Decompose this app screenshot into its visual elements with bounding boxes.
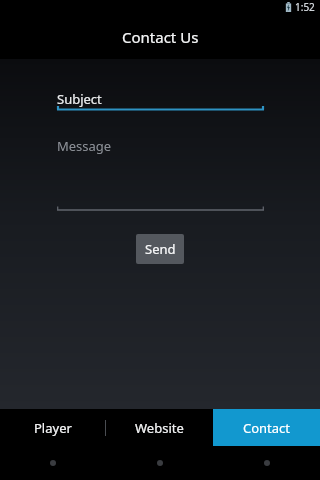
button[interactable]: Back <box>0 446 106 480</box>
staticText: Message <box>57 137 112 155</box>
button[interactable]: Contact <box>213 409 320 446</box>
staticText: Player <box>34 419 72 437</box>
button[interactable]: Send <box>136 234 184 264</box>
staticText: Contact Us <box>122 27 199 47</box>
button[interactable]: Website <box>106 409 213 446</box>
staticText: Subject <box>57 90 102 108</box>
staticText: Contact <box>243 419 291 437</box>
button[interactable]: Subject <box>57 90 264 113</box>
staticText: Send <box>145 240 176 258</box>
button[interactable]: Player <box>0 409 106 446</box>
button[interactable]: Home <box>106 446 213 480</box>
staticText: Website <box>135 419 184 437</box>
button[interactable]: Message <box>57 137 264 212</box>
staticText: 1:52 <box>295 0 315 14</box>
button[interactable]: Recents <box>213 446 320 480</box>
